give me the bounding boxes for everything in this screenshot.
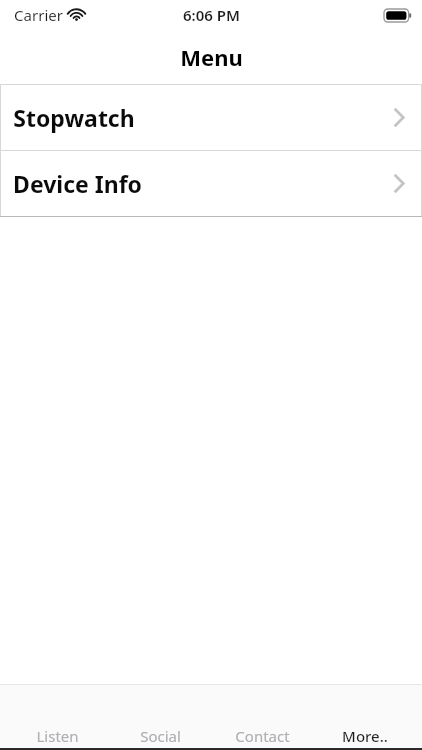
staticText: Stopwatch <box>13 102 135 133</box>
staticText: Listen <box>36 726 79 746</box>
staticText: Social <box>140 726 181 746</box>
staticText: 6:06 PM <box>183 5 240 25</box>
staticText: Contact <box>235 726 290 746</box>
staticText: Device Info <box>13 168 142 199</box>
button[interactable]: More.. <box>319 706 411 746</box>
button[interactable]: Contact <box>216 706 308 746</box>
staticText: Menu <box>180 42 243 72</box>
button[interactable]: Social <box>114 706 206 746</box>
button[interactable]: Stopwatch <box>0 85 422 150</box>
staticText: More.. <box>342 726 388 746</box>
button[interactable]: Device Info <box>0 151 422 216</box>
staticText: Carrier <box>14 5 63 25</box>
button[interactable]: Listen <box>11 706 103 746</box>
